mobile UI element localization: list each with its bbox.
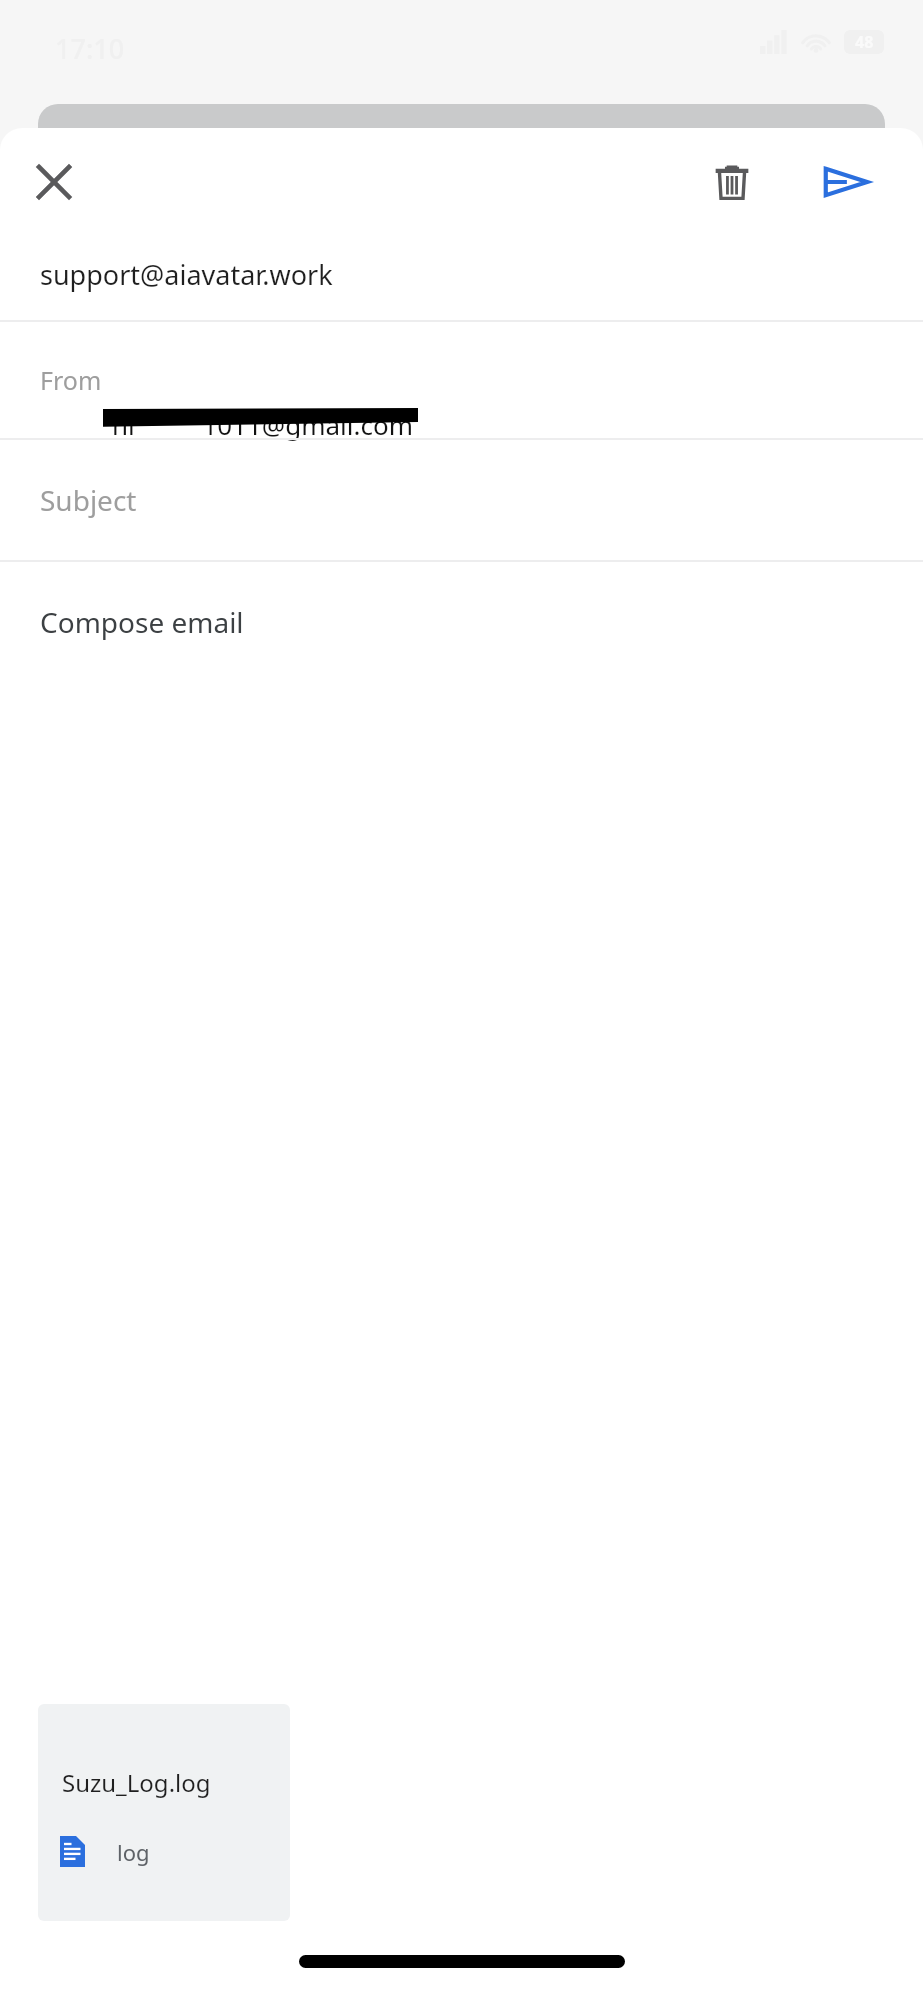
button[interactable]: support@aiavatar.work: [0, 228, 923, 320]
staticText: 48: [855, 31, 874, 53]
staticText: log: [117, 1837, 150, 1867]
staticText: Subject: [40, 481, 137, 519]
staticText: Compose email: [40, 603, 244, 641]
staticText: support@aiavatar.work: [40, 256, 333, 293]
button[interactable]: Close: [18, 146, 90, 218]
button[interactable]: Suzu_Log.log: [38, 1704, 290, 1921]
button[interactable]: From: [0, 322, 923, 438]
staticText: hi 1011@gmail.com: [112, 407, 414, 442]
button[interactable]: Delete draft: [696, 146, 768, 218]
staticText: Suzu_Log.log: [62, 1766, 211, 1799]
button[interactable]: Subject: [0, 440, 923, 560]
staticText: From: [40, 363, 102, 397]
button[interactable]: Compose email: [0, 562, 923, 682]
button[interactable]: Send: [810, 146, 882, 218]
